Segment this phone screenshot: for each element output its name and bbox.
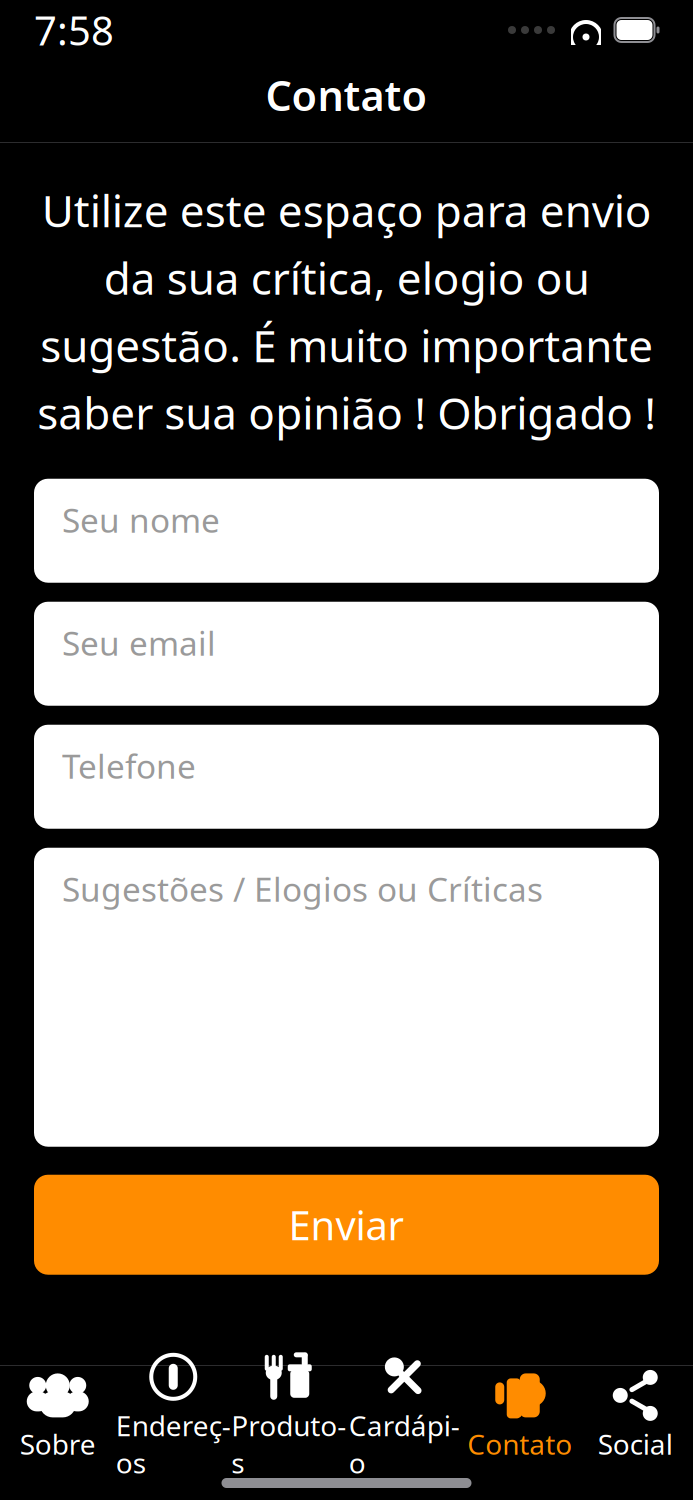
button[interactable]: Telefone — [34, 725, 659, 829]
staticText: Cardápio — [349, 1407, 460, 1481]
staticText: Utilize este espaço para envio da sua cr… — [37, 181, 656, 442]
staticText: Seu nome — [62, 498, 220, 542]
button[interactable]: Sugestões / Elogios ou Críticas — [34, 848, 659, 1147]
button[interactable]: Seu nome — [34, 479, 659, 583]
button[interactable]: Social — [577, 1363, 693, 1469]
staticText: Endereços — [116, 1407, 231, 1481]
staticText: Social — [598, 1425, 673, 1463]
staticText: Sugestões / Elogios ou Críticas — [62, 867, 543, 911]
staticText: Enviar — [288, 1198, 404, 1251]
button[interactable]: Cardápio — [346, 1345, 462, 1487]
staticText: Telefone — [62, 744, 196, 788]
staticText: Produtos — [231, 1407, 346, 1481]
staticText: 7:58 — [34, 3, 114, 56]
staticText: Sobre — [20, 1425, 96, 1463]
button[interactable]: Endereços — [115, 1345, 231, 1487]
button[interactable]: Sobre — [0, 1363, 115, 1469]
button[interactable]: Enviar — [34, 1175, 659, 1275]
staticText: Seu email — [62, 621, 216, 665]
button[interactable]: Produtos — [231, 1345, 346, 1487]
button[interactable]: Seu email — [34, 602, 659, 706]
staticText: Contato — [265, 68, 427, 122]
button[interactable]: Contato — [462, 1363, 577, 1469]
staticText: Contato — [467, 1425, 572, 1463]
